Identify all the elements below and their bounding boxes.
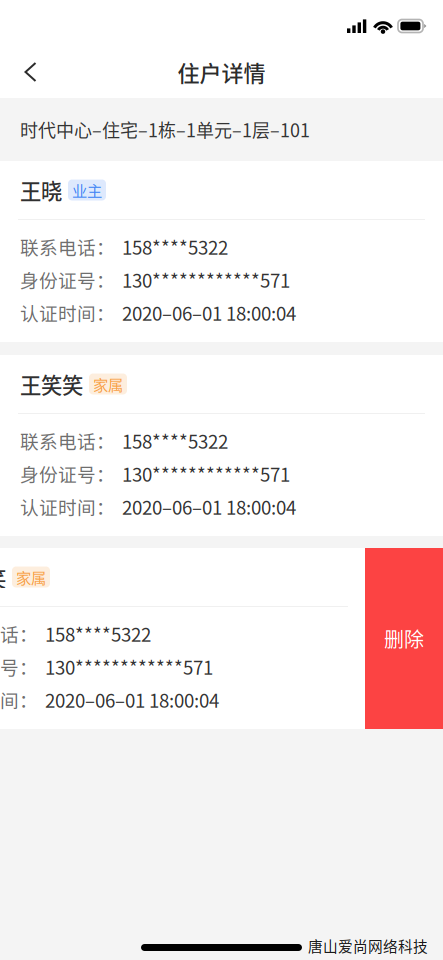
staticText: 2020–06–01 18:00:04 <box>122 299 296 326</box>
staticText: 130************571 <box>122 460 290 487</box>
staticText: 联系电话： <box>0 620 38 647</box>
staticText: 业主 <box>72 179 102 201</box>
staticText: 2020–06–01 18:00:04 <box>45 686 219 713</box>
staticText: 王笑笑 <box>20 369 83 399</box>
staticText: 130************571 <box>45 653 213 680</box>
staticText: 时代中心–住宅–1栋–1单元–1层–101 <box>20 116 310 143</box>
staticText: 认证时间： <box>20 493 115 520</box>
staticText: 王笑笑 <box>0 562 6 592</box>
staticText: 身份证号： <box>0 653 38 680</box>
staticText: 认证时间： <box>0 686 38 713</box>
staticText: 158****5322 <box>122 233 228 260</box>
staticText: 删除 <box>384 624 424 653</box>
staticText: 130************571 <box>122 266 290 293</box>
staticText: 家属 <box>16 566 46 588</box>
staticText: 身份证号： <box>20 460 115 487</box>
staticText: 身份证号： <box>20 266 115 293</box>
staticText: 联系电话： <box>20 233 115 260</box>
staticText: 家属 <box>93 373 123 395</box>
staticText: 联系电话： <box>20 427 115 454</box>
staticText: 158****5322 <box>45 620 151 647</box>
staticText: 158****5322 <box>122 427 228 454</box>
staticText: 住户详情 <box>177 56 265 88</box>
staticText: 唐山爱尚网络科技 <box>308 935 428 956</box>
button[interactable]: 删除 <box>365 548 443 729</box>
button[interactable]: 返回 <box>0 46 62 98</box>
staticText: 王晓 <box>20 175 62 205</box>
staticText: 2020–06–01 18:00:04 <box>122 493 296 520</box>
staticText: 认证时间： <box>20 299 115 326</box>
